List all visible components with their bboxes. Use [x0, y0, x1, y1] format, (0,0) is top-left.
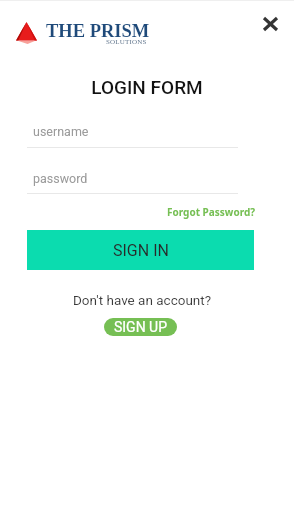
button[interactable]: Close	[254, 8, 286, 40]
button[interactable]: SIGN IN	[27, 230, 254, 270]
staticText: SIGN UP	[114, 319, 168, 335]
staticText: THE PRISM	[46, 21, 150, 41]
button[interactable]: SIGN UP	[104, 318, 177, 336]
staticText: SOLUTIONS	[106, 38, 147, 46]
staticText: SIGN IN	[113, 241, 169, 260]
staticText: username	[33, 124, 89, 139]
staticText: Don't have an account?	[73, 292, 212, 308]
button[interactable]: Forgot Password?	[167, 205, 256, 219]
staticText: LOGIN FORM	[0, 76, 294, 98]
staticText: password	[33, 171, 88, 186]
staticText: Forgot Password?	[167, 205, 256, 219]
